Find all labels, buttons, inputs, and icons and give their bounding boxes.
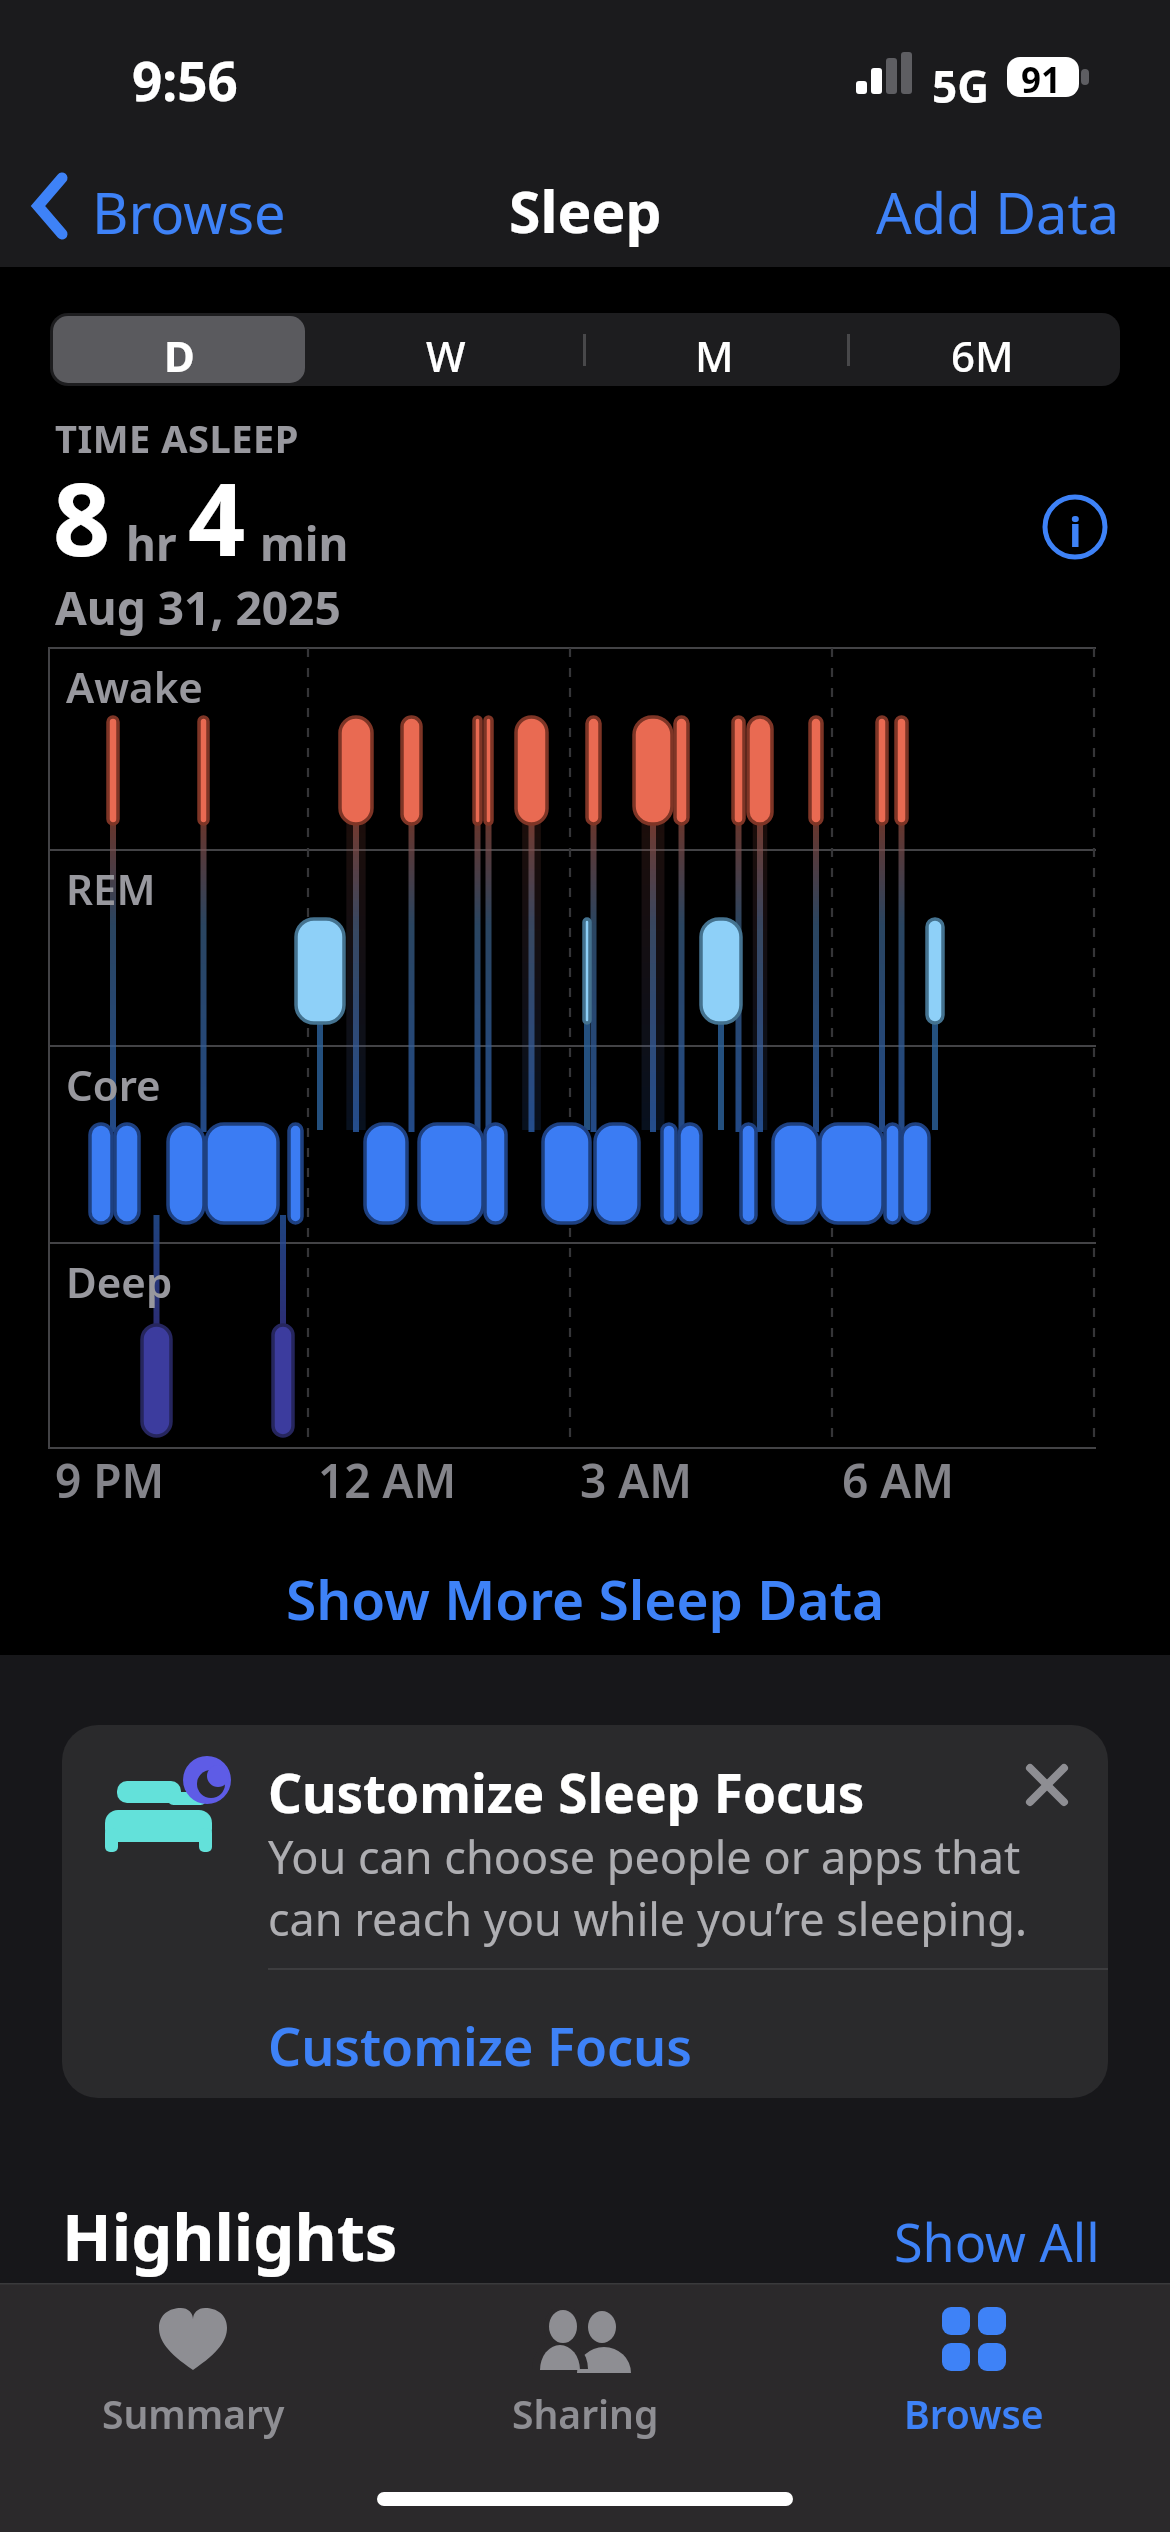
button[interactable]: Show More Sleep Data (0, 0, 800, 75)
staticText: Core (66, 1056, 161, 1113)
staticText: 91 (1021, 56, 1062, 104)
staticText: 4 (188, 449, 246, 585)
staticText: 6M (951, 327, 1014, 384)
staticText: hr (126, 512, 177, 575)
staticText: Browse (904, 2387, 1044, 2440)
staticText: 3 AM (580, 1449, 692, 1512)
button[interactable] (1015, 1753, 1079, 1817)
staticText: REM (66, 860, 156, 917)
button[interactable]: i (1042, 494, 1108, 560)
staticText: Customize Sleep Focus (268, 1756, 865, 1828)
staticText: Deep (66, 1253, 173, 1310)
staticText: Awake (66, 658, 203, 715)
staticText: 8 (53, 449, 111, 585)
staticText: Sleep (509, 172, 662, 250)
staticText: TIME ASLEEP (55, 412, 299, 464)
staticText: Sharing (512, 2387, 659, 2440)
staticText: 9 PM (55, 1449, 165, 1512)
button[interactable]: Add Data (0, 0, 500, 76)
staticText: i (1069, 502, 1082, 559)
staticText: Summary (102, 2387, 285, 2440)
staticText: Highlights (62, 2192, 398, 2281)
button[interactable]: Customize Focus (0, 0, 424, 71)
staticText: W (426, 327, 466, 384)
staticText: Show More Sleep Data (286, 1561, 885, 1636)
staticText: min (260, 512, 349, 575)
button[interactable] (53, 316, 305, 383)
button[interactable]: Browse (0, 0, 194, 76)
button[interactable]: Show All (0, 0, 500, 71)
staticText: You can choose people or apps that can r… (268, 1826, 1027, 1949)
button[interactable] (62, 1725, 1108, 2098)
staticText: Aug 31, 2025 (55, 576, 341, 639)
staticText: Show All (894, 2206, 1100, 2277)
staticText: D (164, 327, 195, 384)
staticText: M (695, 327, 734, 384)
staticText: Add Data (876, 174, 1120, 250)
staticText: 9:56 (132, 44, 238, 116)
staticText: 5G (932, 56, 990, 116)
staticText: 12 AM (318, 1449, 457, 1512)
staticText: 6 AM (842, 1449, 954, 1512)
